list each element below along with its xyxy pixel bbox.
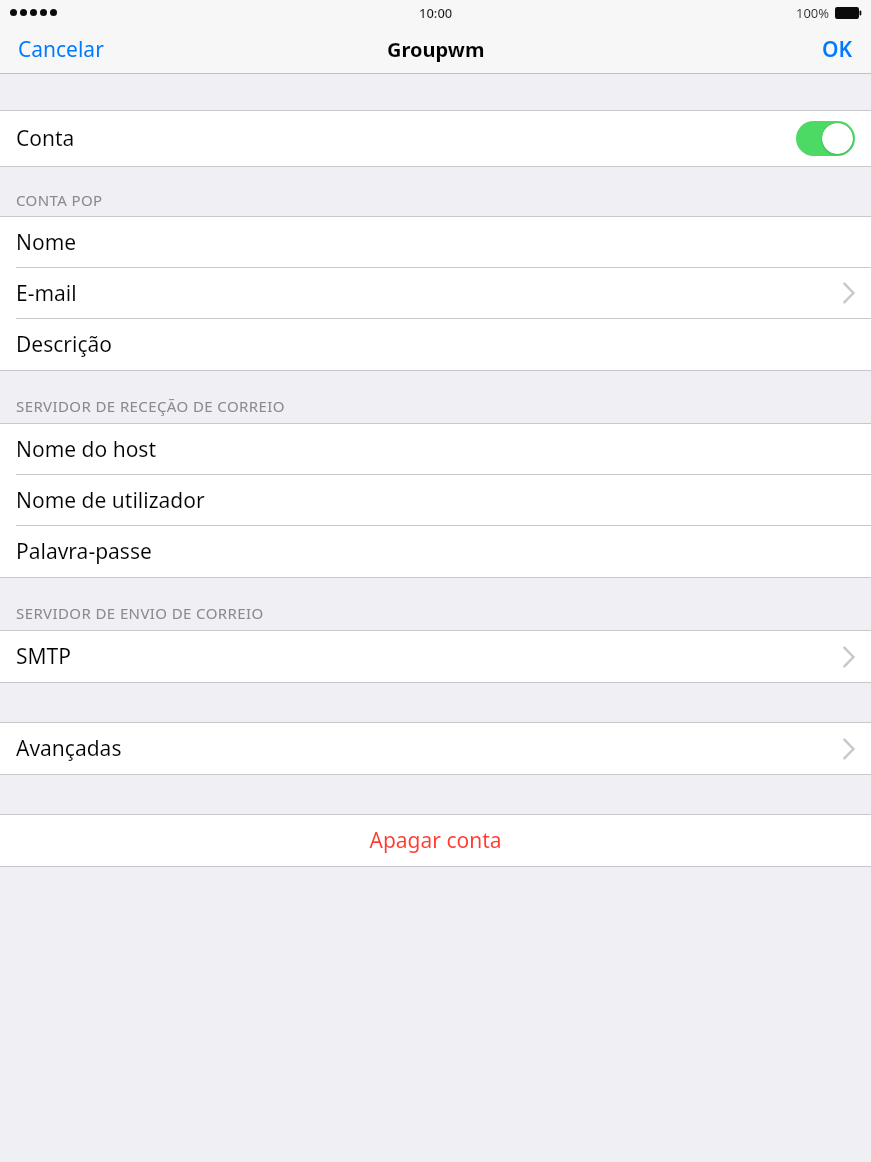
button[interactable]: E-mail <box>0 268 871 318</box>
staticText: CONTA POP <box>16 190 103 210</box>
staticText: Conta <box>16 124 75 153</box>
button[interactable]: Nome de utilizador <box>0 475 871 525</box>
staticText: Palavra-passe <box>16 537 152 566</box>
button[interactable]: Descrição <box>0 319 871 370</box>
staticText: Descrição <box>16 330 112 359</box>
button[interactable]: Avançadas <box>0 723 871 774</box>
staticText: OK <box>822 35 853 64</box>
button[interactable]: Conta <box>0 111 871 166</box>
staticText: SERVIDOR DE ENVIO DE CORREIO <box>16 603 264 623</box>
staticText: E-mail <box>16 279 77 308</box>
staticText: Nome <box>16 228 77 257</box>
staticText: SERVIDOR DE RECEÇÃO DE CORREIO <box>16 396 285 416</box>
button[interactable]: Apagar conta <box>0 815 871 866</box>
staticText: Nome do host <box>16 435 157 464</box>
staticText: Cancelar <box>18 35 104 64</box>
button[interactable]: Palavra-passe <box>0 526 871 577</box>
button[interactable]: Cancelar <box>0 25 122 74</box>
staticText: Apagar conta <box>369 826 502 855</box>
staticText: 10:00 <box>419 4 453 22</box>
button[interactable]: Conta toggle <box>796 121 855 156</box>
staticText: Groupwm <box>387 36 485 63</box>
staticText: Nome de utilizador <box>16 486 205 515</box>
staticText: Avançadas <box>16 734 122 763</box>
staticText: SMTP <box>16 642 71 671</box>
button[interactable]: OK <box>804 25 871 74</box>
button[interactable]: SMTP <box>0 631 871 682</box>
staticText: 100% <box>796 4 830 22</box>
button[interactable]: Nome <box>0 217 871 267</box>
button[interactable]: Nome do host <box>0 424 871 474</box>
